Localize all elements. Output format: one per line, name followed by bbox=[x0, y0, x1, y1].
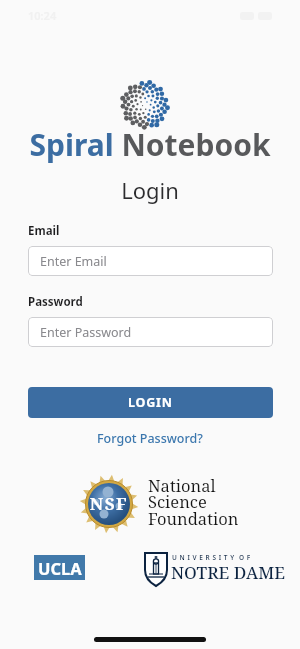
button[interactable]: Forgot Password? bbox=[97, 430, 203, 447]
staticText: U N I V E R S I T Y O F bbox=[172, 553, 251, 562]
staticText: NSF bbox=[80, 492, 138, 515]
button[interactable]: UCLA bbox=[34, 555, 85, 580]
staticText: Enter Password bbox=[40, 324, 132, 341]
button[interactable]: Enter Password bbox=[28, 317, 273, 347]
staticText: Password bbox=[28, 294, 83, 310]
staticText: UCLA bbox=[38, 557, 82, 579]
button[interactable]: LOGIN bbox=[28, 387, 273, 418]
staticText: Login bbox=[0, 175, 300, 205]
staticText: Spiral Notebook bbox=[0, 124, 300, 165]
staticText: Email bbox=[28, 223, 60, 239]
staticText: National Science Foundation bbox=[148, 474, 239, 530]
button[interactable]: Enter Email bbox=[28, 246, 273, 276]
staticText: Enter Email bbox=[40, 253, 107, 270]
staticText: NOTRE DAME bbox=[171, 561, 285, 584]
staticText: 10:24 bbox=[28, 8, 57, 23]
staticText: LOGIN bbox=[128, 394, 173, 411]
